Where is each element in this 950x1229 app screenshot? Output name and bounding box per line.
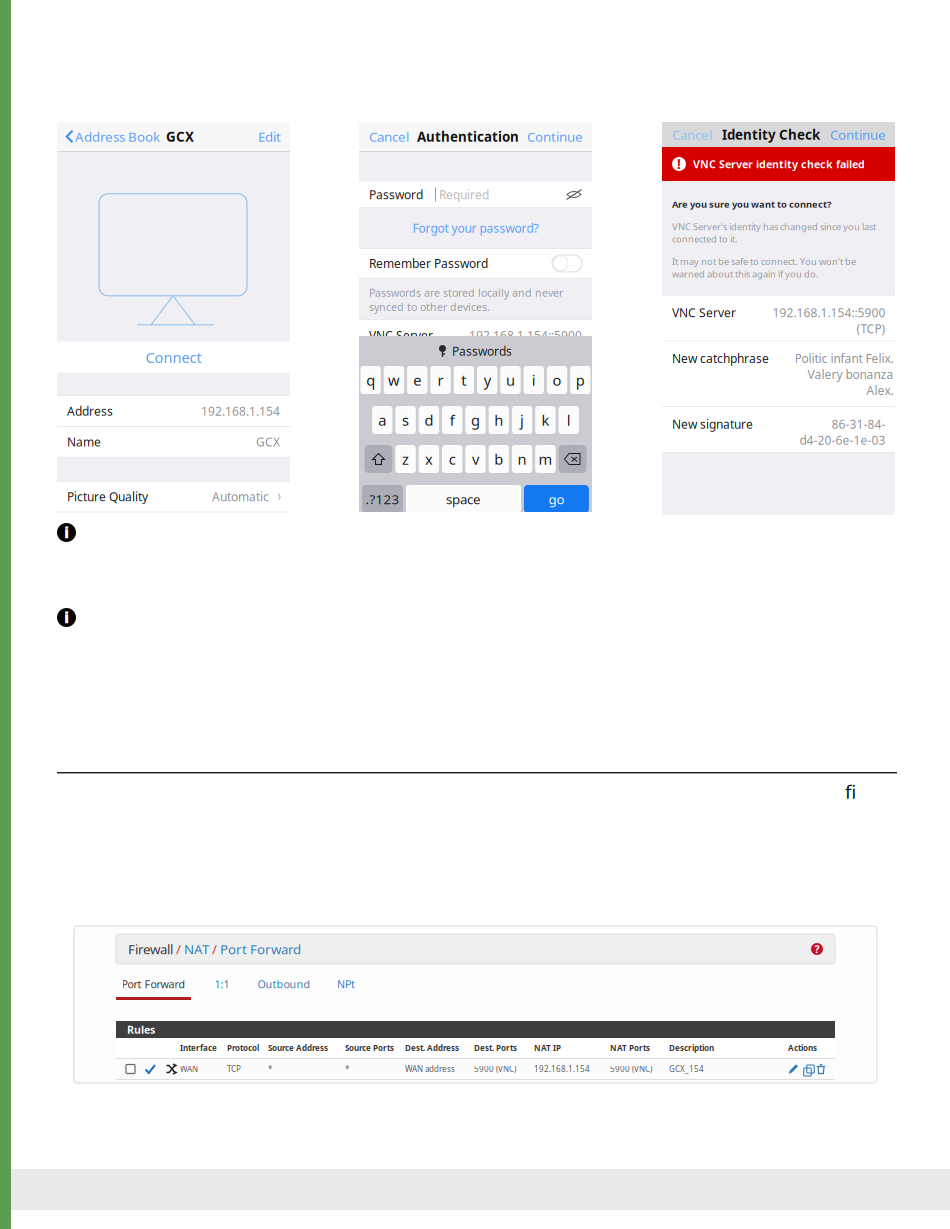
staticText: fi <box>845 779 856 804</box>
button[interactable]: Continue <box>830 126 895 143</box>
staticText: v <box>472 449 479 469</box>
staticText: Password <box>369 186 423 202</box>
staticText: Dest. Ports <box>474 1043 517 1053</box>
staticText: VNC Server's identity has changed since … <box>672 220 876 245</box>
staticText: Passwords are stored locally and never s… <box>369 286 563 314</box>
button[interactable]: Edit <box>788 1063 799 1074</box>
staticText: Continue <box>527 128 583 145</box>
staticText: g <box>471 410 480 430</box>
staticText: Source Address <box>268 1043 328 1053</box>
staticText: 5900 (VNC) <box>610 1064 652 1074</box>
staticText: Address <box>67 403 113 419</box>
staticText: Firewall <box>128 940 173 958</box>
staticText: Address Book <box>75 128 160 145</box>
staticText: e <box>413 370 421 390</box>
staticText: GCX_154 <box>669 1064 704 1074</box>
staticText: Automatic <box>212 489 269 504</box>
button[interactable]: Delete <box>816 1063 827 1074</box>
staticText: Name <box>67 434 101 450</box>
button[interactable]: 1:1 <box>191 976 253 1000</box>
staticText: 192.168.1.154 <box>534 1064 590 1074</box>
button[interactable]: Select rule <box>126 1064 135 1073</box>
button[interactable]: NPt <box>315 976 377 1000</box>
staticText: w <box>388 370 400 390</box>
staticText: GCX <box>256 434 280 450</box>
staticText: / <box>209 940 220 958</box>
staticText: Rules <box>127 1022 155 1037</box>
staticText: go <box>548 490 564 508</box>
button[interactable]: Forgot your password? <box>359 208 592 248</box>
staticText: h <box>494 410 503 430</box>
staticText: ? <box>814 942 819 956</box>
staticText: Source Ports <box>345 1043 394 1053</box>
staticText: ! <box>677 155 681 173</box>
staticText: Port Forward <box>220 940 301 958</box>
staticText: .?123 <box>366 490 400 508</box>
staticText: s <box>402 410 409 430</box>
button[interactable]: Continue <box>527 128 592 145</box>
staticText: Remember Password <box>369 255 488 271</box>
button[interactable]: Port Forward <box>116 976 191 1000</box>
staticText: z <box>402 449 409 469</box>
staticText: u <box>506 370 515 390</box>
button[interactable]: Show password <box>566 188 582 200</box>
button[interactable]: Remember Password <box>552 255 582 272</box>
staticText: It may not be safe to connect. You won't… <box>672 255 856 280</box>
button[interactable]: Cancel <box>359 128 409 145</box>
staticText: 192.168.1.154::5900 (TCP) <box>772 305 885 337</box>
staticText: Continue <box>830 126 886 143</box>
staticText: x <box>425 449 433 469</box>
staticText: n <box>518 449 527 469</box>
button[interactable]: Outbound <box>253 976 315 1000</box>
staticText: New signature <box>672 416 753 432</box>
staticText: l <box>567 410 571 430</box>
staticText: * <box>268 1064 272 1074</box>
staticText: NAT Ports <box>610 1043 650 1053</box>
button[interactable]: Cancel <box>662 126 712 143</box>
button[interactable]: Address Book <box>57 128 160 145</box>
staticText: t <box>461 370 466 390</box>
staticText: b <box>494 449 503 469</box>
staticText: Edit <box>258 128 281 145</box>
staticText: Passwords <box>452 343 512 359</box>
staticText: Are you sure you want to connect? <box>672 198 831 210</box>
staticText: i <box>64 606 69 628</box>
staticText: Interface <box>180 1043 217 1053</box>
button[interactable]: Help <box>811 943 823 955</box>
staticText: Connect <box>145 348 201 367</box>
staticText: TCP <box>227 1064 241 1074</box>
staticText: 5900 (VNC) <box>474 1064 516 1074</box>
button[interactable]: Port Forward <box>220 940 301 958</box>
staticText: c <box>449 449 456 469</box>
button[interactable]: Connect <box>57 342 290 373</box>
staticText: y <box>484 370 491 390</box>
staticText: 192.168.1.154::5900 <box>469 327 582 343</box>
staticText: Authentication <box>417 128 519 145</box>
staticText: Description <box>669 1043 714 1053</box>
staticText: Protocol <box>227 1043 259 1053</box>
staticText: VNC Server identity check failed <box>693 157 865 171</box>
staticText: / <box>173 940 184 958</box>
staticText: f <box>450 410 455 430</box>
button[interactable]: Duplicate <box>802 1063 813 1074</box>
staticText: Port Forward <box>121 977 185 991</box>
staticText: VNC Server <box>369 327 433 343</box>
staticText: 86-31-84-d4-20-6e-1e-03 <box>799 416 885 448</box>
staticText: q <box>366 370 375 390</box>
button[interactable]: Edit <box>258 128 290 145</box>
staticText: 1:1 <box>214 977 229 991</box>
staticText: VNC Server <box>672 305 736 321</box>
button[interactable]: NAT <box>184 940 209 958</box>
staticText: o <box>552 370 561 390</box>
staticText: r <box>437 370 443 390</box>
staticText: i <box>64 521 69 543</box>
staticText: * <box>345 1064 349 1074</box>
staticText: WAN <box>180 1064 198 1074</box>
staticText: m <box>538 449 552 469</box>
staticText: Cancel <box>672 126 712 143</box>
staticText: Required <box>439 186 489 202</box>
staticText: Dest. Address <box>405 1043 459 1053</box>
staticText: space <box>446 490 481 508</box>
staticText: Picture Quality <box>67 489 148 504</box>
staticText: NAT <box>184 940 209 958</box>
